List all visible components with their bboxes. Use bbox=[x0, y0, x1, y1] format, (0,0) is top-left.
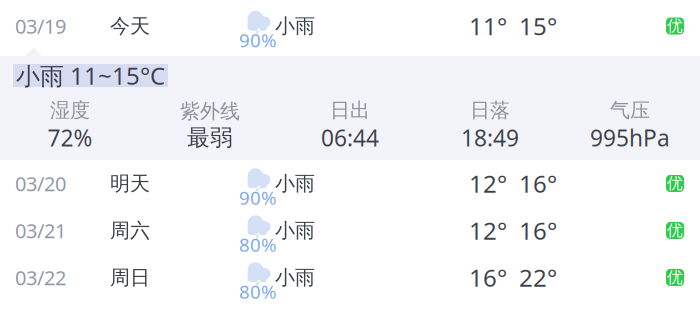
staticText: 周六 bbox=[110, 218, 150, 243]
staticText: 03/21 bbox=[15, 217, 66, 244]
staticText: 日出 bbox=[330, 98, 370, 123]
button[interactable]: 03/21 bbox=[0, 207, 700, 254]
staticText: 优 bbox=[667, 16, 683, 36]
staticText: 气压 bbox=[610, 98, 650, 123]
staticText: 90% bbox=[239, 185, 277, 210]
staticText: 16° bbox=[469, 262, 507, 293]
staticText: 995hPa bbox=[590, 123, 670, 153]
staticText: 72% bbox=[47, 123, 92, 153]
staticText: 12° bbox=[469, 215, 507, 246]
staticText: 日落 bbox=[470, 98, 510, 123]
staticText: 06:44 bbox=[321, 123, 379, 153]
staticText: 小雨 bbox=[275, 265, 315, 290]
staticText: 小雨 11~15°C bbox=[16, 60, 165, 91]
staticText: 15° bbox=[519, 10, 557, 42]
staticText: 优 bbox=[667, 221, 683, 240]
staticText: 优 bbox=[667, 174, 683, 193]
staticText: 11° bbox=[469, 10, 507, 42]
staticText: 明天 bbox=[110, 171, 150, 196]
staticText: 湿度 bbox=[50, 98, 90, 123]
staticText: 今天 bbox=[110, 14, 150, 38]
button[interactable]: 03/19 bbox=[0, 0, 700, 52]
staticText: 最弱 bbox=[187, 124, 233, 151]
staticText: 优 bbox=[667, 268, 683, 287]
staticText: 12° bbox=[469, 168, 507, 199]
staticText: 90% bbox=[239, 28, 277, 52]
staticText: 紫外线 bbox=[180, 99, 240, 124]
staticText: 18:49 bbox=[461, 123, 519, 153]
button[interactable]: 03/22 bbox=[0, 254, 700, 301]
staticText: 80% bbox=[239, 279, 277, 304]
staticText: 周日 bbox=[110, 265, 150, 290]
staticText: 小雨 bbox=[275, 14, 315, 38]
staticText: 小雨 bbox=[275, 171, 315, 196]
staticText: 22° bbox=[519, 262, 557, 293]
staticText: 03/19 bbox=[15, 13, 66, 39]
staticText: 03/20 bbox=[15, 170, 66, 197]
staticText: 小雨 bbox=[275, 218, 315, 243]
button[interactable]: 03/20 bbox=[0, 160, 700, 207]
staticText: 16° bbox=[519, 168, 557, 199]
staticText: 80% bbox=[239, 232, 277, 257]
staticText: 16° bbox=[519, 215, 557, 246]
staticText: 03/22 bbox=[15, 264, 66, 291]
